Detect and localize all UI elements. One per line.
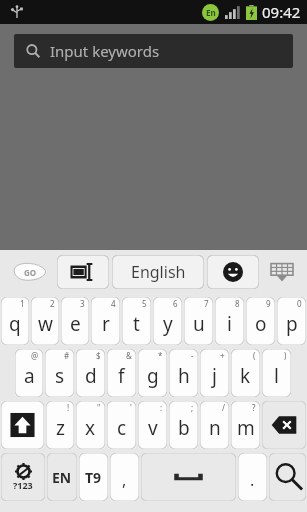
staticText: n xyxy=(209,415,221,441)
button[interactable]: @ xyxy=(15,349,43,397)
staticText: h xyxy=(178,363,190,389)
staticText: T9 xyxy=(85,468,102,487)
staticText: 9 xyxy=(266,298,271,309)
staticText: - xyxy=(191,350,194,361)
button[interactable]: : xyxy=(138,401,167,449)
button[interactable]: 2 xyxy=(31,297,59,345)
staticText: Input keywords xyxy=(50,41,160,61)
button[interactable]: / xyxy=(200,401,229,449)
staticText: " xyxy=(97,402,101,413)
staticText: e xyxy=(70,311,81,337)
button[interactable]: & xyxy=(107,349,136,397)
button[interactable]: 3 xyxy=(61,297,89,345)
staticText: / xyxy=(222,402,225,413)
button[interactable]: GO Keyboard xyxy=(3,250,57,294)
button[interactable]: + xyxy=(200,349,229,397)
button[interactable]: " xyxy=(76,401,105,449)
staticText: c xyxy=(117,415,127,441)
staticText: 7 xyxy=(204,298,209,309)
staticText: 0 xyxy=(297,298,302,309)
button[interactable]: , xyxy=(110,453,139,501)
button[interactable]: 8 xyxy=(215,297,244,345)
button[interactable]: Hide keyboard xyxy=(260,250,304,294)
button[interactable]: English xyxy=(112,255,204,289)
staticText: . xyxy=(250,469,255,491)
button[interactable]: ( xyxy=(231,349,260,397)
button[interactable]: Search xyxy=(269,453,306,501)
button[interactable]: Emoji xyxy=(207,255,259,289)
button[interactable]: 7 xyxy=(184,297,213,345)
staticText: m xyxy=(237,415,255,441)
staticText: & xyxy=(126,350,132,361)
staticText: f xyxy=(118,363,125,389)
button[interactable]: 9 xyxy=(246,297,275,345)
staticText: s xyxy=(55,363,65,389)
staticText: 8 xyxy=(235,298,240,309)
staticText: * xyxy=(158,350,163,361)
staticText: , xyxy=(122,469,127,491)
button[interactable]: # xyxy=(45,349,74,397)
staticText: 6 xyxy=(173,298,178,309)
staticText: # xyxy=(64,350,70,361)
staticText: v xyxy=(148,415,158,441)
button[interactable]: Shift xyxy=(1,401,44,449)
staticText: ) xyxy=(284,350,287,361)
staticText: k xyxy=(240,363,251,389)
button[interactable]: Space xyxy=(141,453,236,501)
button[interactable]: Symbols and settings xyxy=(1,453,45,501)
staticText: a xyxy=(24,363,35,389)
button[interactable]: * xyxy=(138,349,167,397)
button[interactable]: 1 xyxy=(1,297,29,345)
staticText: EN xyxy=(52,468,72,487)
button[interactable]: 6 xyxy=(153,297,182,345)
button[interactable]: ) xyxy=(262,349,291,397)
staticText: b xyxy=(178,415,190,441)
button[interactable]: ? xyxy=(231,401,260,449)
staticText: GO xyxy=(24,267,37,278)
staticText: p xyxy=(286,311,298,337)
button[interactable]: - xyxy=(169,349,198,397)
button[interactable]: 5 xyxy=(122,297,151,345)
button[interactable]: ! xyxy=(46,401,74,449)
staticText: 5 xyxy=(142,298,147,309)
staticText: i xyxy=(227,311,232,337)
button[interactable]: ' xyxy=(107,401,136,449)
staticText: @ xyxy=(31,350,39,361)
button[interactable]: 0 xyxy=(277,297,306,345)
staticText: ; xyxy=(191,402,194,413)
staticText: 1 xyxy=(20,298,25,309)
staticText: ?123 xyxy=(13,479,33,491)
staticText: English xyxy=(131,261,186,283)
staticText: ( xyxy=(253,350,256,361)
button[interactable]: Backspace xyxy=(262,401,306,449)
staticText: : xyxy=(160,402,163,413)
button[interactable]: EN xyxy=(47,453,77,501)
staticText: $ xyxy=(96,350,101,361)
button[interactable]: $ xyxy=(76,349,105,397)
staticText: u xyxy=(193,311,205,337)
staticText: ' xyxy=(130,402,132,413)
staticText: q xyxy=(9,311,21,337)
staticText: o xyxy=(255,311,267,337)
staticText: 3 xyxy=(80,298,85,309)
staticText: t xyxy=(133,311,140,337)
staticText: ! xyxy=(67,402,70,413)
button[interactable]: Input keywords xyxy=(14,34,293,68)
staticText: ? xyxy=(252,402,256,413)
staticText: r xyxy=(102,311,110,337)
staticText: x xyxy=(85,415,96,441)
staticText: l xyxy=(274,363,279,389)
button[interactable]: Clipboard xyxy=(57,255,109,289)
staticText: g xyxy=(147,363,159,389)
staticText: 2 xyxy=(50,298,55,309)
staticText: 09:42 xyxy=(262,2,301,22)
staticText: En xyxy=(206,7,216,18)
button[interactable]: 4 xyxy=(91,297,120,345)
staticText: d xyxy=(85,363,97,389)
staticText: z xyxy=(56,415,65,441)
staticText: j xyxy=(212,363,217,389)
button[interactable]: ; xyxy=(169,401,198,449)
button[interactable]: . xyxy=(238,453,267,501)
button[interactable]: T9 xyxy=(79,453,108,501)
staticText: + xyxy=(220,350,225,361)
